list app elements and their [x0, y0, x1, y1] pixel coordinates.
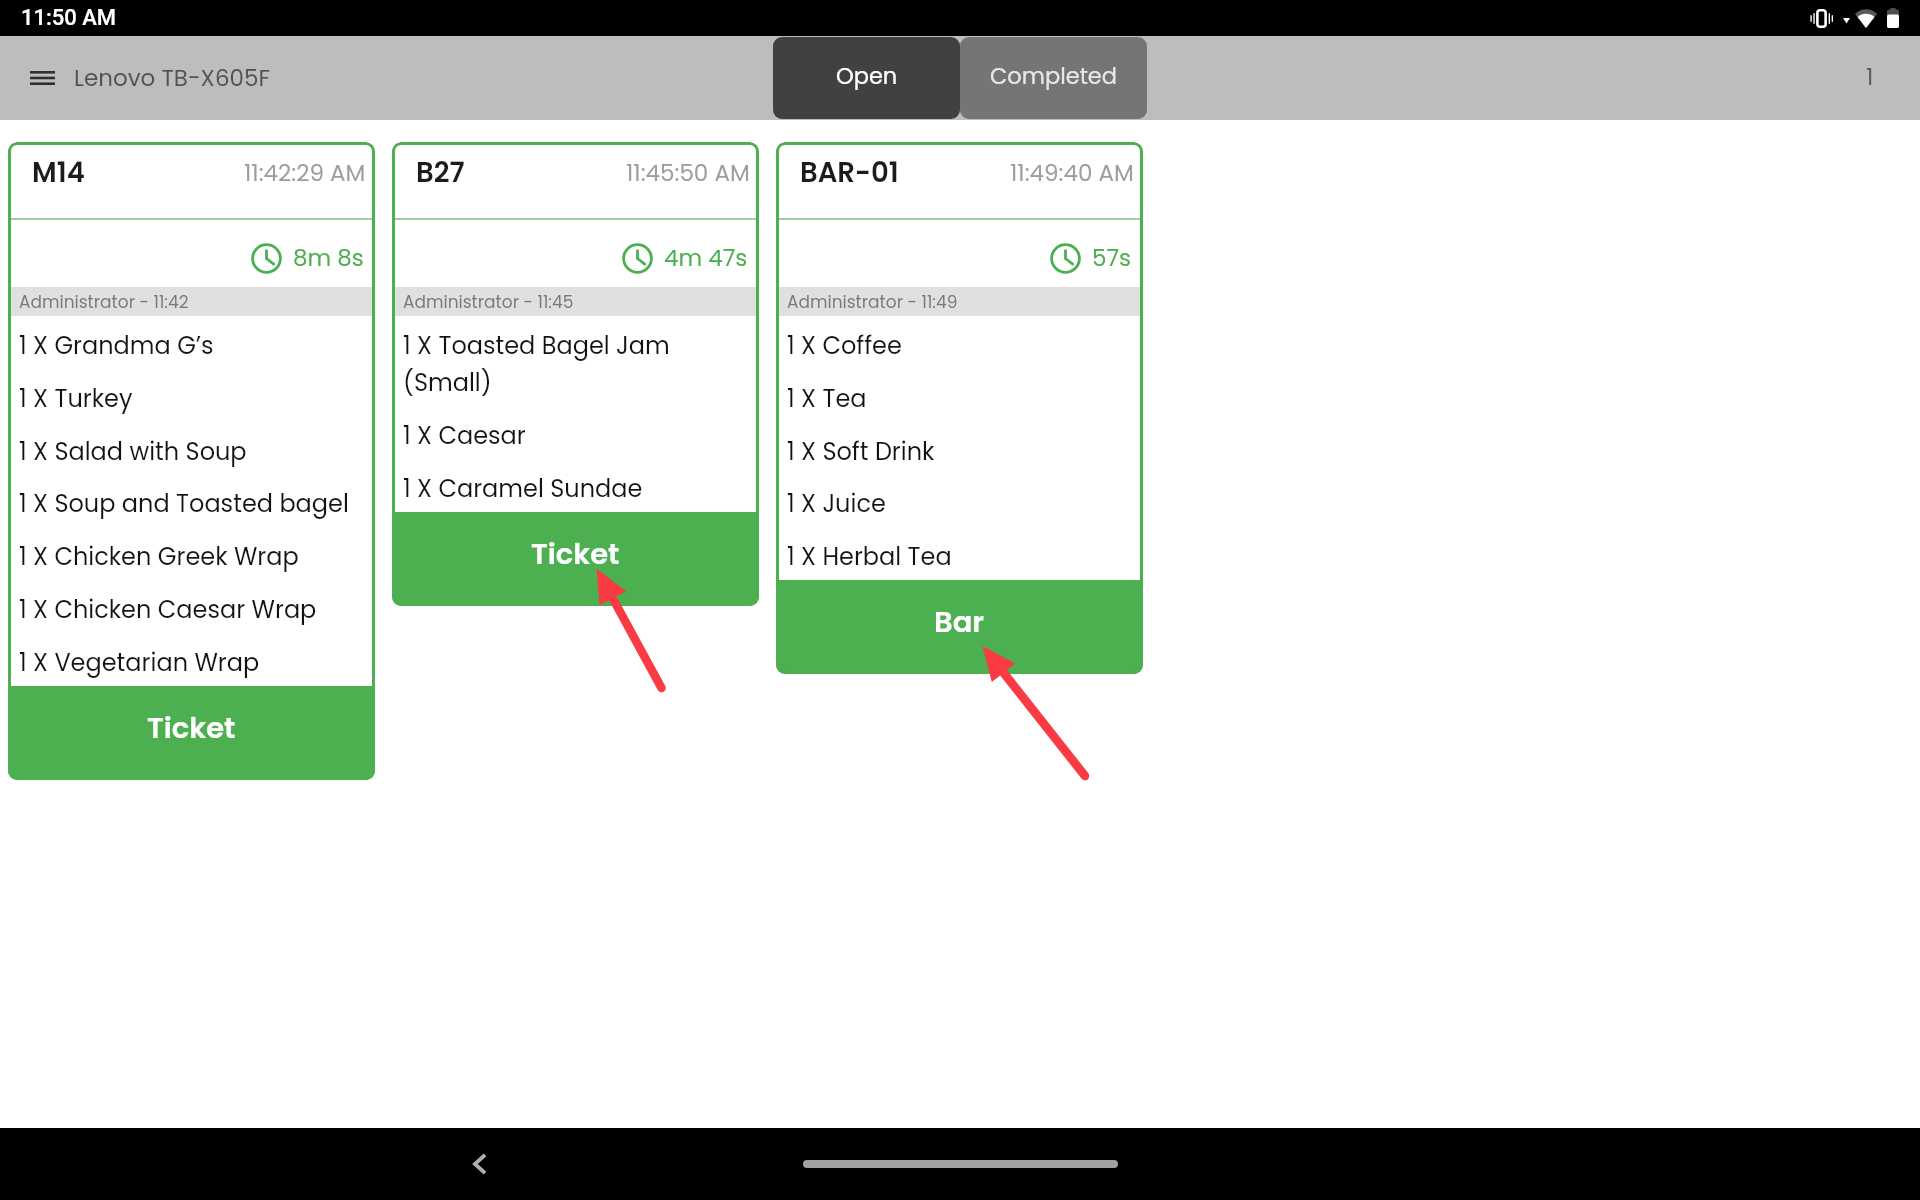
staticText: Ticket	[147, 708, 236, 749]
staticText: 1 X Vegetarian Wrap	[19, 644, 260, 681]
staticText: 1 X Soup and Toasted bagel	[19, 485, 349, 522]
button[interactable]: Completed	[960, 37, 1147, 119]
staticText: 1 X Soft Drink	[787, 433, 935, 470]
staticText: 11:50 AM	[21, 5, 117, 31]
staticText: 1 X Toasted Bagel Jam (Small)	[403, 327, 751, 401]
staticText: 11:45:50 AM	[626, 157, 750, 189]
staticText: Lenovo TB-X605F	[74, 62, 270, 94]
staticText: Administrator - 11:45	[403, 290, 574, 314]
button[interactable]: Ticket	[8, 686, 375, 780]
button[interactable]: Back	[448, 1132, 512, 1196]
staticText: 1 X Chicken Greek Wrap	[19, 538, 299, 575]
staticText: 1 X Coffee	[787, 327, 902, 364]
button[interactable]: Home	[803, 1160, 1118, 1168]
staticText: BAR-01	[800, 153, 899, 191]
staticText: 1 X Juice	[787, 485, 886, 522]
button[interactable]: M14	[8, 142, 375, 780]
staticText: Administrator - 11:49	[787, 290, 958, 314]
staticText: 1 X Chicken Caesar Wrap	[19, 591, 317, 628]
button[interactable]: Ticket	[392, 512, 759, 606]
staticText: B27	[416, 153, 465, 191]
staticText: 8m 8s	[293, 242, 364, 274]
staticText: Completed	[990, 60, 1117, 91]
staticText: 11:49:40 AM	[1010, 157, 1134, 189]
staticText: Ticket	[531, 534, 620, 575]
staticText: 1 X Caramel Sundae	[403, 470, 643, 507]
staticText: 1 X Salad with Soup	[19, 433, 247, 470]
staticText: 4m 47s	[664, 242, 748, 274]
staticText: 1 X Turkey	[19, 380, 133, 417]
staticText: 1 X Caesar	[403, 417, 526, 454]
staticText: 1 X Tea	[787, 380, 867, 417]
button[interactable]: Bar	[776, 580, 1143, 674]
staticText: Administrator - 11:42	[19, 290, 189, 314]
button[interactable]: BAR-01	[776, 142, 1143, 674]
staticText: Open	[836, 60, 898, 91]
staticText: 1	[1866, 61, 1874, 93]
button[interactable]: Open navigation menu	[17, 53, 67, 103]
staticText: 1 X Grandma G’s	[19, 327, 214, 364]
staticText: 1 X Herbal Tea	[787, 538, 952, 575]
staticText: Bar	[934, 602, 985, 643]
staticText: M14	[32, 153, 85, 191]
button[interactable]: B27	[392, 142, 759, 606]
staticText: 11:42:29 AM	[244, 157, 366, 189]
button[interactable]: Open	[773, 37, 960, 119]
staticText: 57s	[1092, 242, 1132, 274]
